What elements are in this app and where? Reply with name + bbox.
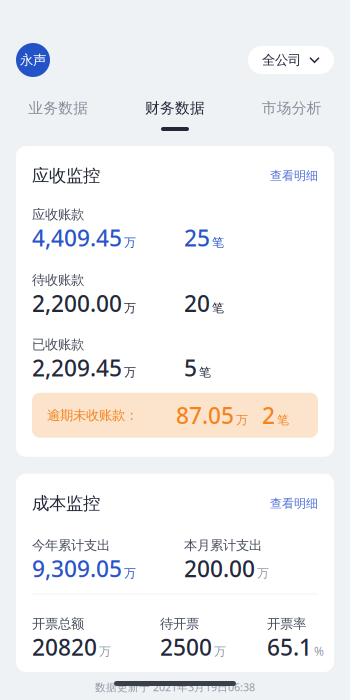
staticText: 5	[184, 353, 197, 383]
staticText: 应收账款	[32, 206, 84, 223]
staticText: 市场分析	[262, 99, 322, 117]
button[interactable]: 公司头像	[16, 43, 50, 77]
staticText: 9,309.05	[32, 553, 122, 583]
staticText: 65.1	[267, 632, 312, 662]
staticText: 2	[262, 400, 275, 430]
staticText: 万	[124, 365, 136, 380]
staticText: 万	[124, 235, 136, 250]
staticText: 全公司	[262, 52, 301, 68]
staticText: 87.05	[176, 400, 234, 430]
staticText: 永声	[20, 52, 46, 68]
staticText: 万	[124, 300, 136, 315]
staticText: 成本监控	[32, 493, 100, 514]
staticText: 查看明细	[270, 168, 318, 183]
staticText: 200.00	[184, 553, 255, 583]
staticText: 待收账款	[32, 272, 84, 288]
staticText: 2,209.45	[32, 353, 122, 383]
staticText: 已收账款	[32, 336, 84, 353]
staticText: 数据更新于 2021年3月19日06:38	[95, 680, 255, 694]
staticText: 万	[214, 644, 226, 659]
staticText: 20820	[32, 632, 97, 662]
staticText: 本月累计支出	[184, 537, 262, 553]
staticText: 2500	[160, 632, 212, 662]
staticText: 4,409.45	[32, 223, 122, 253]
staticText: 今年累计支出	[32, 537, 110, 553]
staticText: 待开票	[160, 615, 199, 632]
staticText: 笔	[212, 235, 224, 250]
button[interactable]: 财务数据	[117, 99, 233, 131]
staticText: 业务数据	[28, 99, 88, 117]
staticText: 25	[184, 223, 210, 253]
staticText: 万	[257, 566, 269, 580]
staticText: 万	[236, 413, 248, 427]
staticText: 应收监控	[32, 165, 100, 186]
staticText: 2,200.00	[32, 288, 122, 318]
staticText: 20	[184, 288, 210, 318]
button[interactable]: 查看明细	[270, 496, 318, 511]
staticText: %	[314, 643, 324, 659]
staticText: 查看明细	[270, 496, 318, 511]
staticText: 开票总额	[32, 615, 84, 632]
staticText: 万	[124, 566, 136, 580]
staticText: 万	[99, 644, 111, 659]
button[interactable]: 全公司	[248, 46, 334, 74]
staticText: 笔	[277, 413, 289, 427]
staticText: 财务数据	[145, 99, 205, 117]
staticText: 笔	[199, 365, 211, 380]
button[interactable]: 业务数据	[0, 99, 117, 131]
button[interactable]: 市场分析	[233, 99, 350, 131]
staticText: 开票率	[267, 615, 306, 632]
staticText: 笔	[212, 300, 224, 315]
button[interactable]: 查看明细	[270, 168, 318, 183]
staticText: 逾期未收账款：	[47, 407, 138, 423]
